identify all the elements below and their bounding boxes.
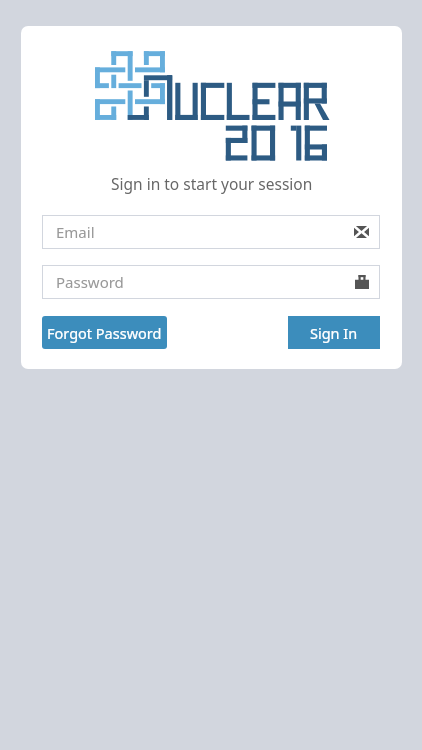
staticText: Email [56, 222, 95, 242]
other: Password [355, 275, 369, 289]
button[interactable]: Email [42, 215, 380, 249]
button[interactable]: Password [42, 265, 380, 299]
other: Email [354, 226, 369, 238]
staticText: Sign in to start your session [111, 173, 313, 194]
button[interactable]: Forgot Password [42, 316, 167, 349]
staticText: Forgot Password [47, 323, 162, 343]
staticText: Sign In [310, 323, 358, 343]
button[interactable]: Sign In [288, 316, 380, 349]
staticText: Password [56, 272, 124, 292]
